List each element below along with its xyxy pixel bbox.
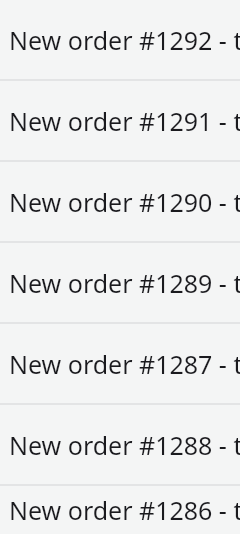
staticText: New order #1289 - tap to view details xyxy=(9,266,240,300)
button[interactable]: New order #1287 - tap to view details xyxy=(0,324,240,403)
button[interactable]: New order #1290 - tap to view details xyxy=(0,162,240,241)
staticText: New order #1287 - tap to view details xyxy=(9,347,240,381)
staticText: New order #1286 - tap to view details xyxy=(9,493,240,527)
button[interactable]: New order #1286 - tap to view details xyxy=(0,486,240,534)
button[interactable]: New order #1289 - tap to view details xyxy=(0,243,240,322)
button[interactable]: New order #1288 - tap to view details xyxy=(0,405,240,484)
staticText: New order #1291 - tap to view details xyxy=(9,104,240,138)
button[interactable]: New order #1291 - tap to view details xyxy=(0,81,240,160)
button[interactable]: New order #1292 - tap to view details xyxy=(0,0,240,79)
staticText: New order #1290 - tap to view details xyxy=(9,185,240,219)
staticText: New order #1288 - tap to view details xyxy=(9,428,240,462)
staticText: New order #1292 - tap to view details xyxy=(9,23,240,57)
